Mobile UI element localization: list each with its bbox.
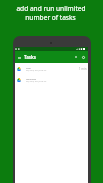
staticText: number of tasks	[25, 13, 76, 22]
button[interactable]: Music	[15, 64, 88, 75]
staticText: Samarahala	[26, 78, 36, 80]
staticText: add and run unlimited	[16, 4, 86, 13]
button[interactable]: Add task	[73, 53, 79, 61]
staticText: 1 min	[79, 67, 87, 71]
button[interactable]: Samarahala	[15, 75, 88, 86]
button[interactable]: More options	[80, 53, 86, 61]
staticText: Music	[26, 67, 31, 69]
button[interactable]: Open navigation menu	[17, 54, 22, 61]
staticText: Tasks	[24, 54, 36, 60]
staticText: Tue, Aug 6, 2019, 01:00 AM	[26, 69, 47, 71]
staticText: Tue, Aug 6, 2019, 01:00 AM	[26, 80, 47, 82]
